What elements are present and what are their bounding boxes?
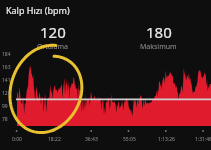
staticText: 1:13:26 (158, 136, 175, 143)
staticText: 120 (2, 90, 11, 97)
staticText: 36:43 (85, 136, 98, 143)
staticText: 163 (2, 64, 11, 71)
staticText: 1:31:48 (195, 136, 211, 143)
staticText: 180 (146, 22, 172, 42)
staticText: 18:22 (48, 136, 61, 143)
staticText: Kalp Hızı (bpm) (6, 4, 70, 16)
staticText: 184 (2, 51, 11, 58)
staticText: 120 (40, 22, 66, 42)
staticText: 55:05 (123, 136, 136, 143)
staticText: Ortalama (37, 42, 69, 52)
staticText: 0:00 (12, 136, 22, 143)
staticText: 78 (2, 116, 8, 123)
staticText: 99 (2, 103, 8, 110)
staticText: 141 (2, 77, 11, 84)
staticText: Maksimum (140, 42, 177, 52)
